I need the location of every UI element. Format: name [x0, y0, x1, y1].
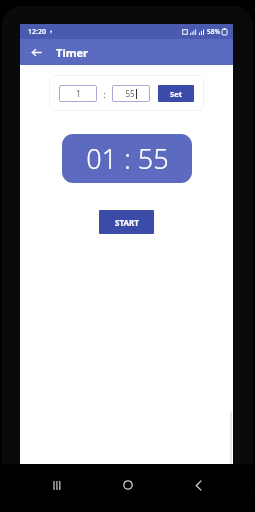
staticText: 01 : 55	[86, 140, 169, 177]
button[interactable]: Set	[158, 85, 194, 102]
button[interactable]: Back	[183, 472, 213, 498]
staticText: 58%	[207, 27, 220, 36]
staticText: Set	[170, 89, 182, 99]
staticText: :	[103, 88, 106, 100]
button[interactable]: 01 : 55	[62, 134, 192, 183]
staticText: 12:20	[28, 27, 46, 37]
button[interactable]: 55	[112, 85, 150, 102]
staticText: Timer	[56, 45, 88, 60]
staticText: 55	[125, 88, 135, 99]
button[interactable]: Home	[113, 472, 143, 498]
button[interactable]: START	[99, 210, 154, 234]
button[interactable]: 1	[59, 85, 97, 102]
button[interactable]: Back	[26, 42, 46, 62]
button[interactable]: Recent apps	[42, 472, 72, 498]
staticText: START	[115, 217, 139, 228]
staticText: 1	[76, 88, 81, 99]
